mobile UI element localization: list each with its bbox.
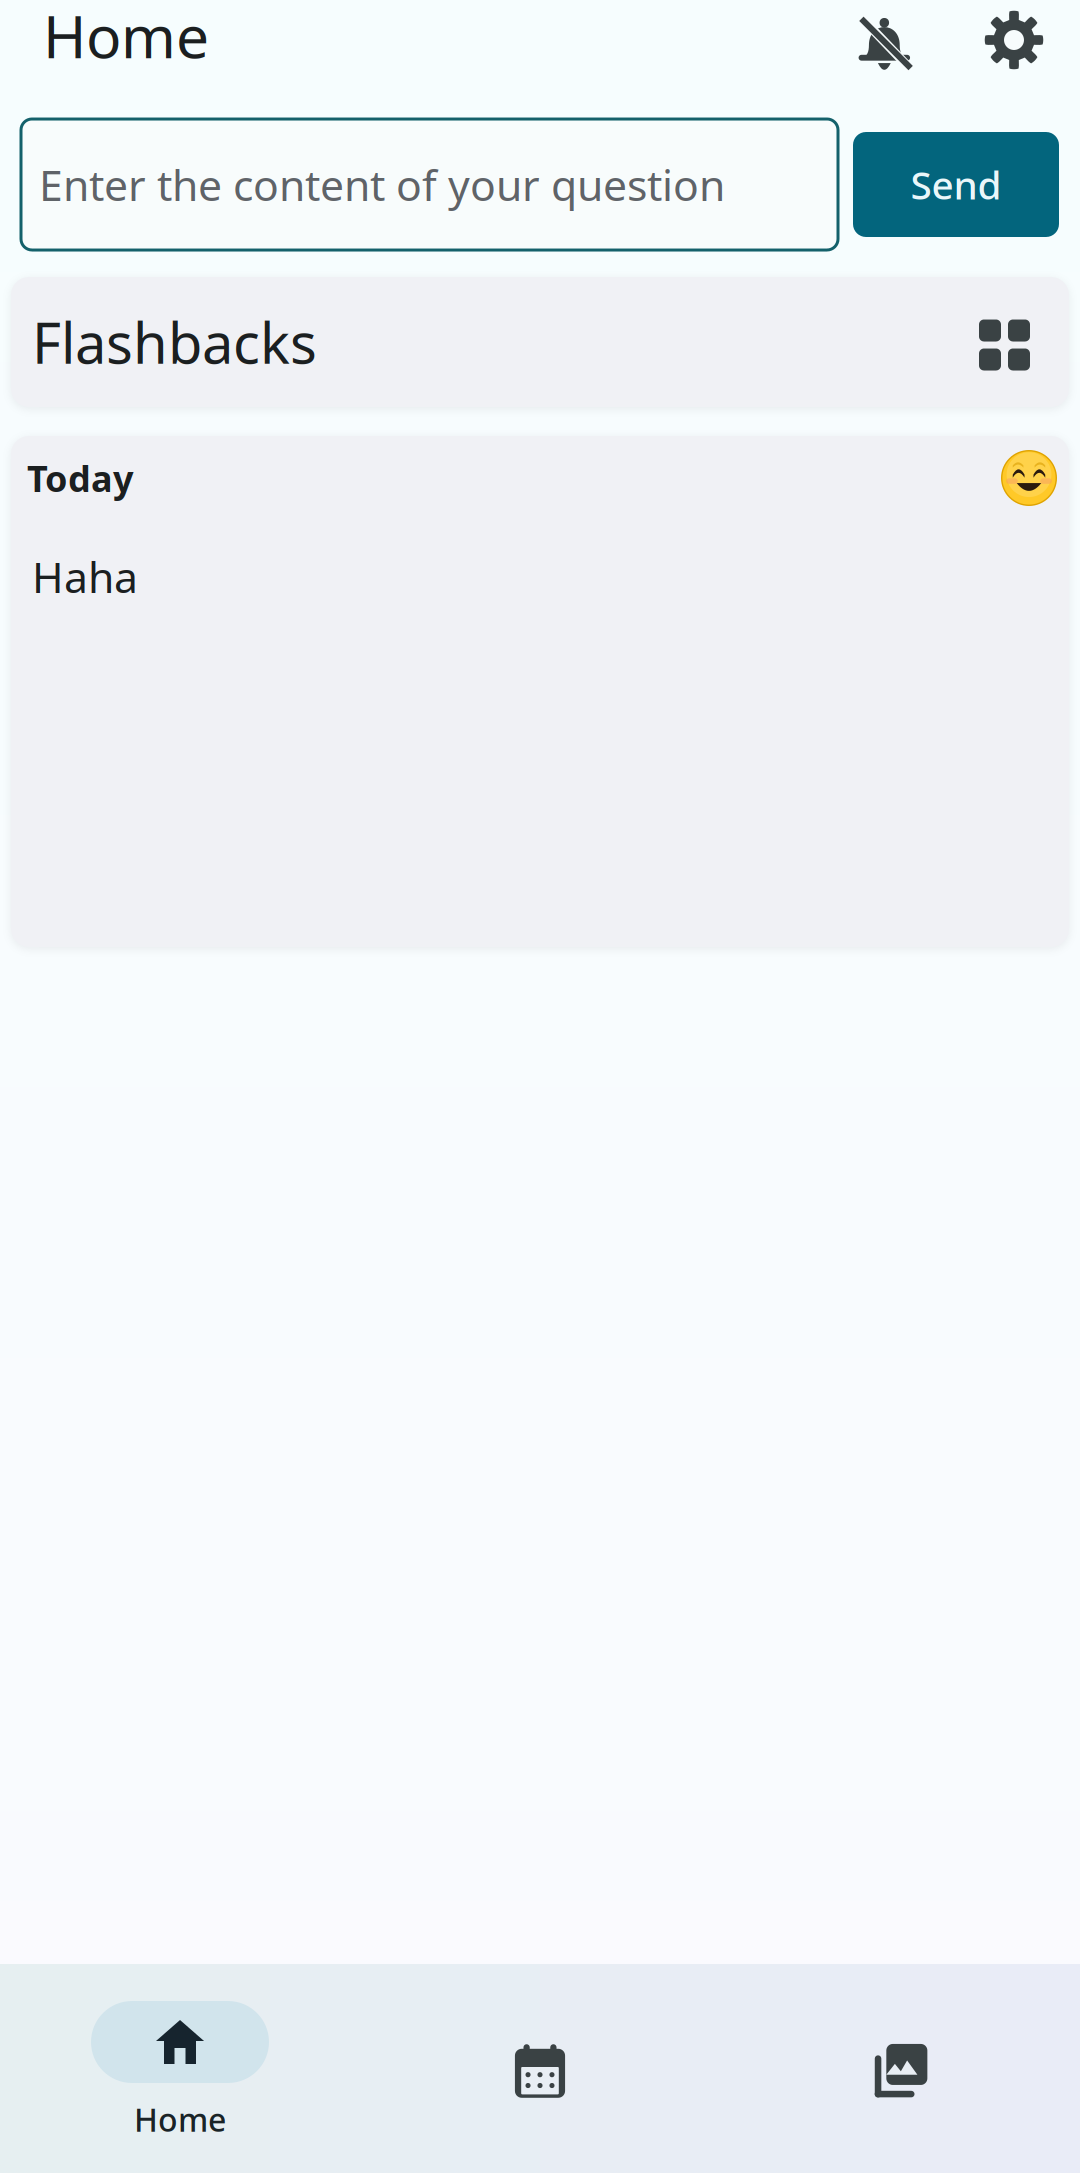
staticText: Send: [910, 159, 1001, 210]
button[interactable]: Notifications off: [800, 0, 966, 80]
button[interactable]: Flashbacks: [11, 277, 1069, 407]
staticText: Home: [134, 2098, 226, 2140]
staticText: Home: [43, 0, 209, 74]
button[interactable]: Calendar: [360, 2001, 720, 2140]
staticText: Enter the content of your question: [39, 156, 725, 213]
button[interactable]: Send: [853, 132, 1059, 237]
staticText: Haha: [32, 548, 138, 605]
button[interactable]: Settings: [966, 0, 1062, 80]
staticText: Flashbacks: [32, 305, 317, 379]
staticText: Today: [27, 454, 134, 502]
button[interactable]: Photos: [720, 2001, 1080, 2140]
button[interactable]: Home: [0, 2001, 360, 2140]
